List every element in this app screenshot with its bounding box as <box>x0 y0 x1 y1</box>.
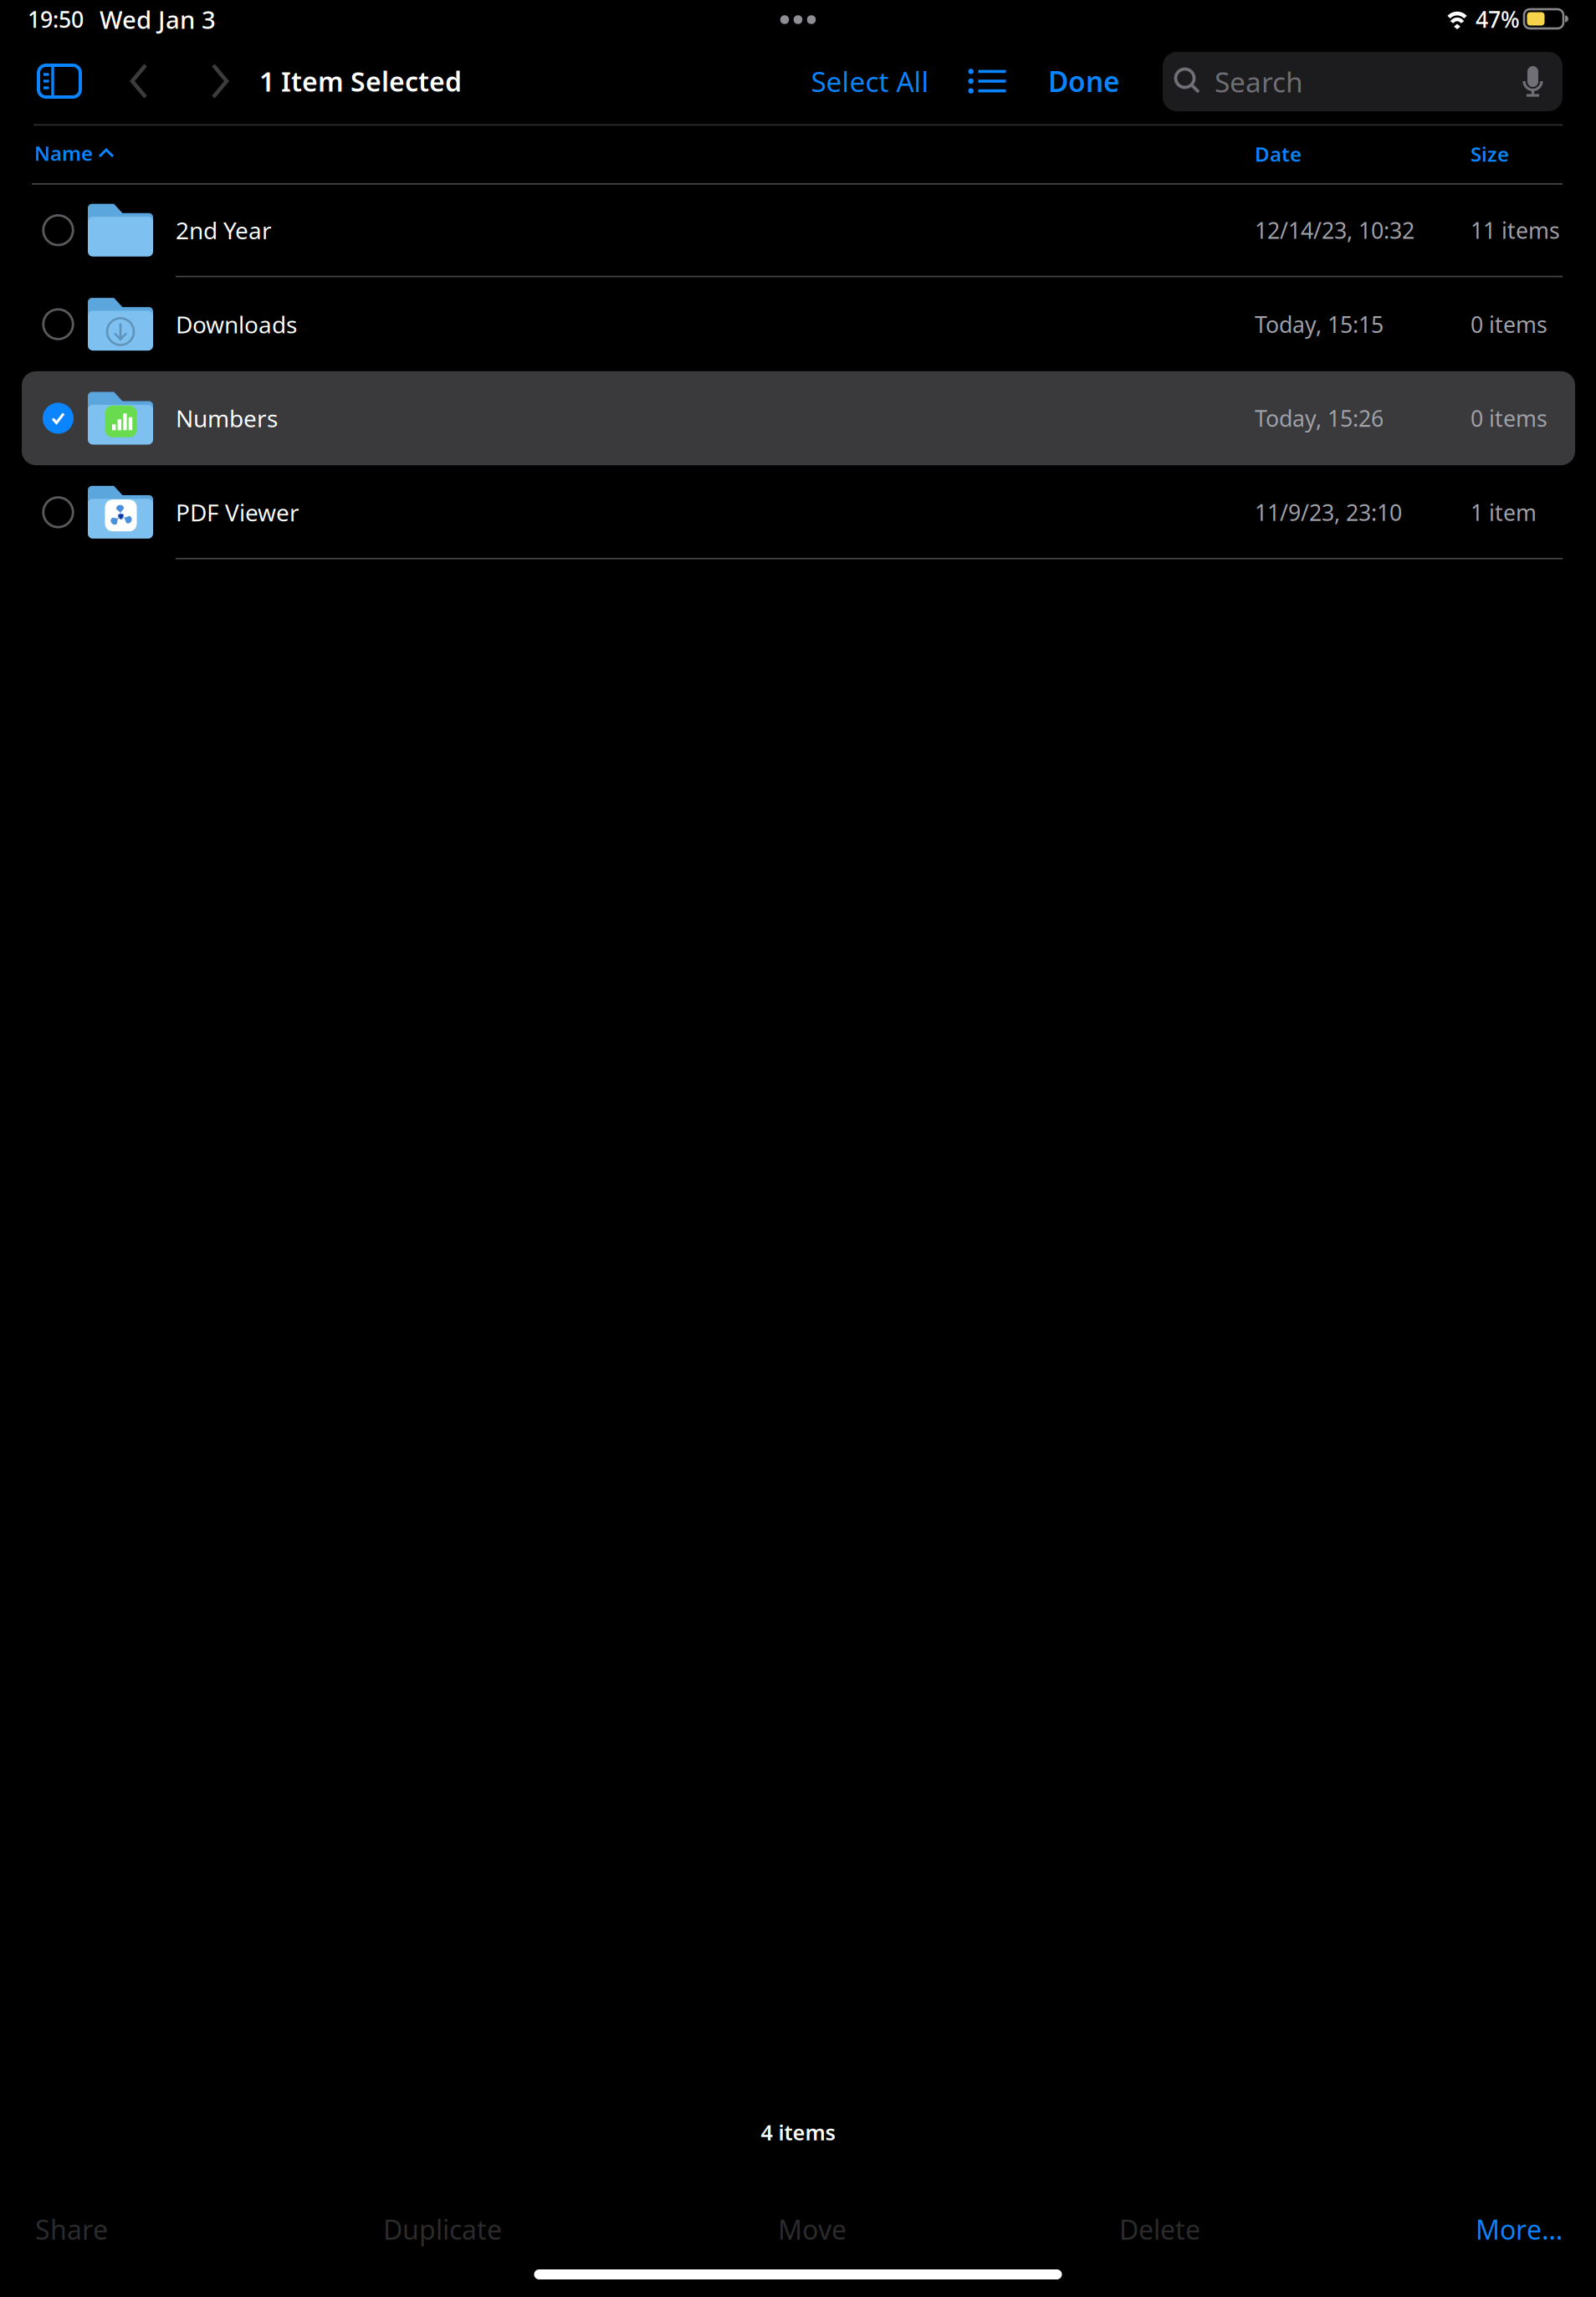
staticText: Date <box>1255 141 1302 167</box>
staticText: 4 items <box>761 2118 835 2146</box>
staticText: Move <box>778 2212 847 2247</box>
staticText: 2nd Year <box>176 215 272 246</box>
staticText: Today, 15:15 <box>1255 309 1384 339</box>
button[interactable]: Done <box>1039 47 1129 115</box>
staticText: 19:50 <box>28 4 84 34</box>
button[interactable]: Select All <box>799 47 941 115</box>
staticText: Wed Jan 3 <box>100 3 216 36</box>
staticText: Search <box>1215 63 1303 100</box>
button[interactable]: Size <box>1471 130 1571 178</box>
button[interactable]: Duplicate <box>383 2203 575 2255</box>
staticText: 0 items <box>1471 309 1547 339</box>
staticText: 47% <box>1476 4 1520 34</box>
staticText: 11/9/23, 23:10 <box>1255 497 1402 527</box>
button[interactable]: 2nd Year <box>0 183 1596 277</box>
button[interactable]: Move <box>778 2203 970 2255</box>
staticText: 11 items <box>1471 215 1560 245</box>
button[interactable]: Delete <box>1119 2203 1312 2255</box>
button[interactable]: Share <box>35 2203 228 2255</box>
button[interactable]: Name <box>34 130 143 178</box>
button[interactable]: Date <box>1255 130 1363 178</box>
staticText: Name <box>34 140 93 166</box>
button[interactable]: Numbers <box>0 371 1596 465</box>
staticText: PDF Viewer <box>176 497 299 528</box>
staticText: 1 Item Selected <box>259 63 462 99</box>
staticText: Today, 15:26 <box>1255 403 1384 433</box>
staticText: Duplicate <box>383 2212 502 2247</box>
button[interactable]: More… <box>1362 2203 1563 2255</box>
staticText: Done <box>1048 63 1120 100</box>
staticText: 0 items <box>1471 403 1547 433</box>
button[interactable]: View Options <box>955 47 1019 115</box>
staticText: Size <box>1471 141 1509 167</box>
button[interactable]: Downloads <box>0 277 1596 371</box>
staticText: Share <box>35 2212 108 2247</box>
button[interactable]: Back <box>107 47 171 115</box>
staticText: Delete <box>1119 2212 1200 2247</box>
button[interactable]: Forward <box>188 47 252 115</box>
staticText: 1 item <box>1471 497 1537 527</box>
staticText: 12/14/23, 10:32 <box>1255 215 1414 245</box>
staticText: More… <box>1476 2212 1563 2247</box>
staticText: Downloads <box>176 309 297 340</box>
staticText: Select All <box>811 63 929 100</box>
button[interactable]: PDF Viewer <box>0 465 1596 559</box>
button[interactable]: Search <box>1163 52 1563 111</box>
staticText: Numbers <box>176 403 278 434</box>
button[interactable]: Toggle Sidebar <box>23 47 96 115</box>
